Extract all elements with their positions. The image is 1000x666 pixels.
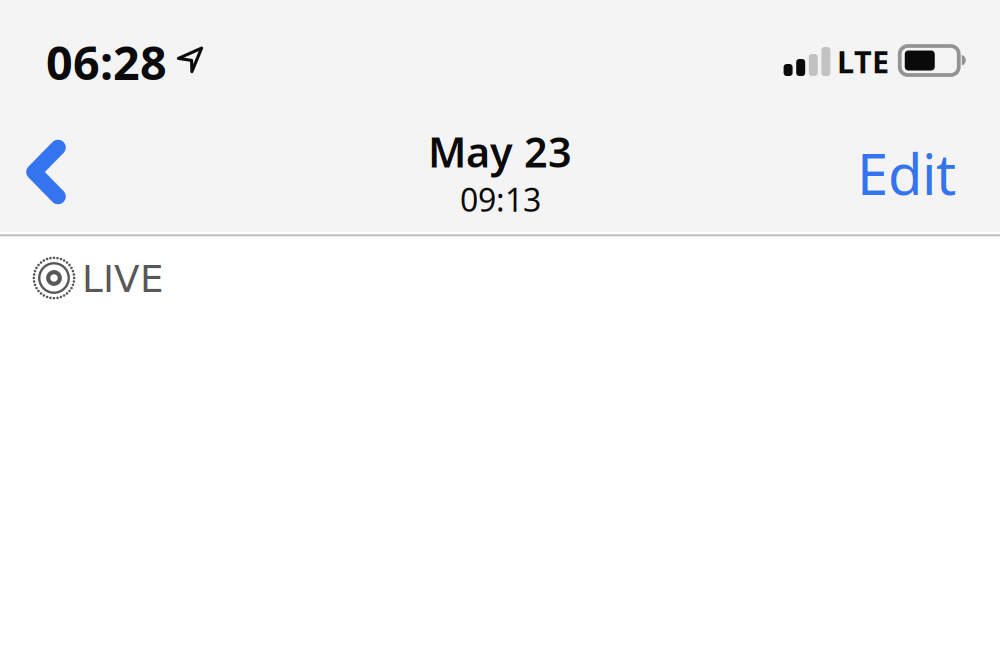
staticText: Edit [857,136,956,210]
staticText: LIVE [82,257,164,301]
staticText: LTE [837,41,889,82]
button[interactable]: Edit [831,114,976,232]
staticText: May 23 [428,124,572,179]
staticText: 09:13 [460,178,541,220]
staticText: 06:28 [46,31,167,93]
button[interactable]: LIVE [33,251,181,305]
button[interactable]: Back [0,115,116,229]
